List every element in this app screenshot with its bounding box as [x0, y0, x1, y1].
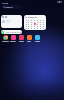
- button[interactable]: Chrome: [1, 35, 9, 42]
- staticText: OCTOBER 2024: [25, 16, 38, 18]
- button[interactable]: Photos: [9, 35, 17, 42]
- staticText: Chrome: [2, 40, 9, 42]
- staticText: Photos: [10, 40, 16, 42]
- button[interactable]: Drive: [33, 35, 41, 42]
- button[interactable]: Files: [25, 35, 33, 42]
- staticText: Search: [5, 6, 13, 9]
- staticText: Drive: [35, 40, 40, 42]
- button[interactable]: Music: [17, 35, 25, 42]
- button[interactable]: OCTOBER 2024: [24, 15, 46, 30]
- button[interactable]: Now playing music: [1, 30, 22, 34]
- staticText: Files: [27, 40, 31, 42]
- staticText: 10:30: [2, 1, 9, 4]
- button[interactable]: [1, 15, 22, 28]
- button[interactable]: Search: [2, 5, 21, 9]
- staticText: Music: [19, 40, 24, 42]
- staticText: Now playing music: [5, 31, 22, 34]
